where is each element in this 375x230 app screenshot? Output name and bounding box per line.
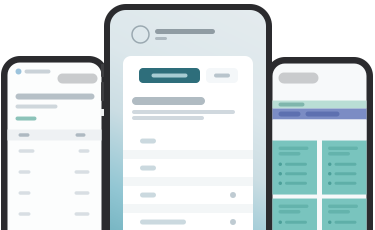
button[interactable] xyxy=(206,68,238,83)
button[interactable]: Menu xyxy=(278,72,318,83)
button[interactable] xyxy=(139,68,200,83)
button[interactable]: Account xyxy=(57,73,97,83)
